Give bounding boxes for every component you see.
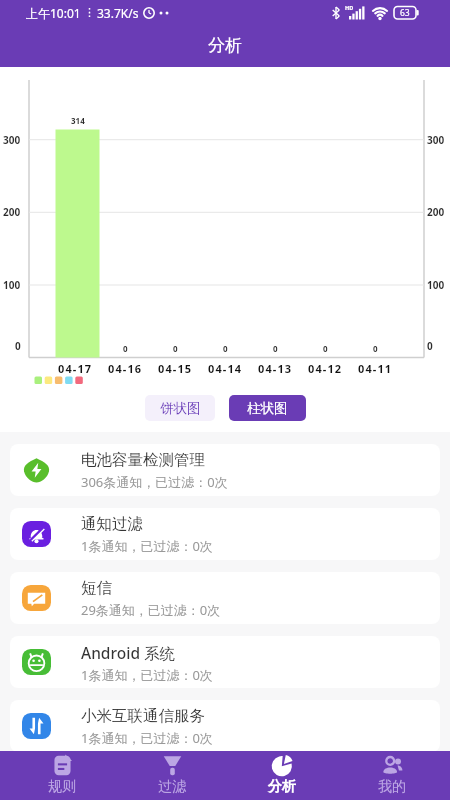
staticText: 04-16: [108, 361, 143, 376]
button[interactable]: 我的: [337, 751, 447, 800]
staticText: 314: [71, 115, 85, 126]
staticText: 300: [427, 133, 445, 147]
staticText: 上午10:01: [26, 5, 81, 21]
staticText: 33.7K/s: [97, 5, 139, 21]
staticText: 300: [3, 133, 21, 147]
button[interactable]: 饼状图: [145, 395, 215, 421]
staticText: 200: [427, 205, 445, 219]
staticText: 规则: [48, 778, 76, 796]
staticText: 1条通知，已过滤：0次: [81, 537, 213, 555]
button[interactable]: 电池容量检测管理: [10, 444, 440, 496]
staticText: 04-17: [58, 361, 93, 376]
staticText: 04-11: [358, 361, 393, 376]
staticText: 0: [373, 343, 378, 354]
staticText: 分析: [268, 778, 296, 796]
button[interactable]: 分析: [227, 751, 337, 800]
staticText: Android 系统: [81, 642, 176, 663]
staticText: 0: [223, 343, 228, 354]
staticText: 0: [173, 343, 178, 354]
staticText: 0: [323, 343, 328, 354]
staticText: ⋮: [84, 6, 95, 19]
staticText: 04-15: [158, 361, 193, 376]
staticText: 100: [3, 278, 21, 292]
staticText: 306条通知，已过滤：0次: [81, 473, 228, 491]
staticText: 小米互联通信服务: [81, 706, 205, 726]
staticText: 63: [400, 7, 410, 19]
staticText: 0: [273, 343, 278, 354]
staticText: HD: [345, 4, 354, 11]
staticText: 我的: [378, 778, 406, 796]
staticText: 29条通知，已过滤：0次: [81, 601, 221, 619]
staticText: 0: [427, 339, 433, 353]
button[interactable]: Android 系统: [10, 636, 440, 688]
button[interactable]: 短信: [10, 572, 440, 624]
staticText: 0: [15, 339, 21, 353]
staticText: 饼状图: [160, 400, 201, 417]
staticText: 04-14: [208, 361, 243, 376]
button[interactable]: 通知过滤: [10, 508, 440, 560]
staticText: 04-13: [258, 361, 293, 376]
button[interactable]: 小米互联通信服务: [10, 700, 440, 752]
staticText: 柱状图: [247, 400, 288, 417]
staticText: 分析: [208, 35, 242, 56]
staticText: 过滤: [158, 778, 186, 796]
staticText: 电池容量检测管理: [81, 450, 205, 470]
staticText: 1条通知，已过滤：0次: [81, 729, 213, 747]
button[interactable]: 过滤: [117, 751, 227, 800]
button[interactable]: 规则: [7, 751, 117, 800]
staticText: 通知过滤: [81, 514, 143, 534]
staticText: 100: [427, 278, 445, 292]
staticText: 短信: [81, 578, 112, 598]
staticText: 04-12: [308, 361, 343, 376]
staticText: 0: [123, 343, 128, 354]
staticText: 200: [3, 205, 21, 219]
staticText: 1条通知，已过滤：0次: [81, 666, 213, 684]
button[interactable]: 柱状图: [229, 395, 306, 421]
